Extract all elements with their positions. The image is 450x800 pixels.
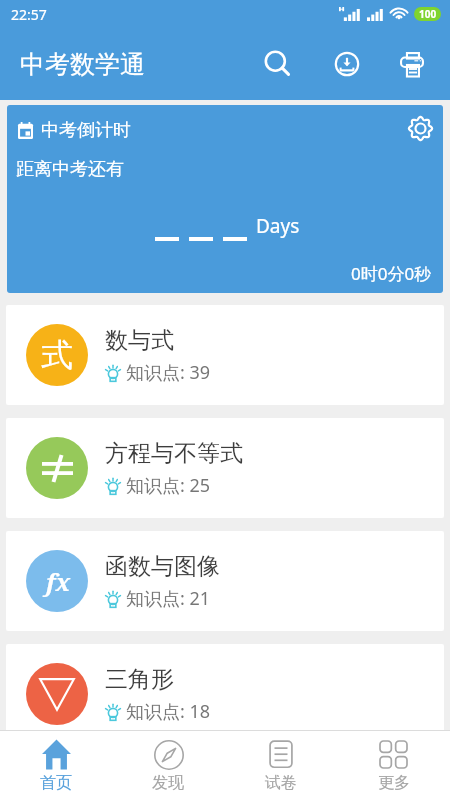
staticText: 函数与图像 <box>105 552 220 581</box>
staticText: 发现 <box>152 773 184 793</box>
staticText: 中考倒计时 <box>41 119 131 142</box>
staticText: 更多 <box>378 773 410 793</box>
button[interactable]: Print <box>388 40 436 88</box>
staticText: 式 <box>41 335 73 375</box>
staticText: 0时0分0秒 <box>351 262 432 285</box>
button[interactable]: 中考倒计时 <box>7 105 443 293</box>
button[interactable]: 发现 <box>112 731 224 800</box>
staticText: 知识点: 39 <box>126 360 211 385</box>
staticText: 知识点: 21 <box>126 586 211 611</box>
staticText: 知识点: 25 <box>126 473 211 498</box>
button[interactable]: Settings <box>402 110 438 146</box>
button[interactable]: 更多 <box>337 731 450 800</box>
button[interactable]: 试卷 <box>224 731 337 800</box>
button[interactable]: 方程与不等式 <box>6 418 444 518</box>
staticText: 知识点: 18 <box>126 699 211 724</box>
staticText: 方程与不等式 <box>105 439 243 468</box>
button[interactable]: 三角形 <box>6 644 444 730</box>
staticText: 距离中考还有 <box>16 158 124 181</box>
button[interactable]: Search <box>253 40 301 88</box>
staticText: fx <box>46 565 71 598</box>
staticText: 100 <box>419 7 437 21</box>
staticText: Days <box>256 213 300 239</box>
staticText: 试卷 <box>265 773 297 793</box>
button[interactable]: fx <box>6 531 444 631</box>
staticText: 中考数学通 <box>20 49 145 80</box>
staticText: 首页 <box>40 773 72 793</box>
button[interactable]: Download <box>323 40 371 88</box>
staticText: 22:57 <box>11 5 47 24</box>
button[interactable]: 首页 <box>0 731 112 800</box>
button[interactable]: 式 <box>6 305 444 405</box>
staticText: 三角形 <box>105 665 174 694</box>
staticText: 数与式 <box>105 326 174 355</box>
